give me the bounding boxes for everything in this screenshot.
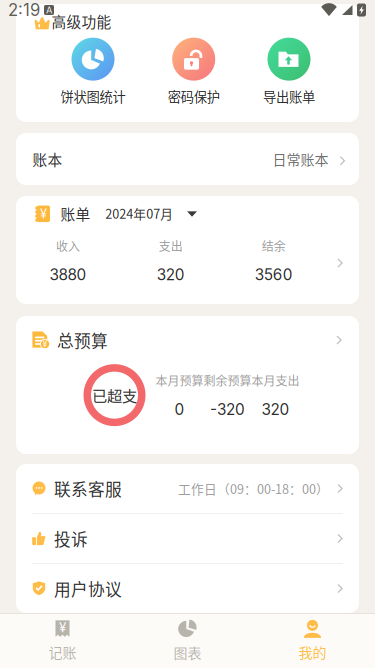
staticText: 密码保护 [168, 87, 220, 106]
staticText: 支出 [159, 237, 183, 254]
staticText: 日常账本 [272, 149, 328, 169]
staticText: ¥ [42, 339, 47, 349]
staticText: 320 [261, 400, 289, 419]
staticText: 账本 [33, 149, 63, 170]
button[interactable]: ¥ [16, 316, 359, 352]
staticText: 0 [174, 400, 184, 419]
staticText: 总预算 [57, 328, 108, 352]
staticText: 结余 [262, 237, 286, 254]
staticText: 记账 [48, 642, 76, 662]
button[interactable]: ¥ [16, 196, 359, 304]
button[interactable]: 导出账单 [241, 38, 337, 106]
staticText: 320 [157, 265, 185, 284]
button[interactable]: 账本 [16, 133, 359, 185]
staticText: 账单 [60, 203, 90, 224]
staticText: 本月支出 [251, 372, 299, 389]
staticText: ¥ [59, 619, 66, 635]
button[interactable]: 饼状图统计 [45, 38, 141, 106]
staticText: 我的 [298, 642, 326, 662]
staticText: 工作日（09：00-18：00） [178, 479, 329, 498]
staticText: 本月预算 [155, 372, 203, 389]
staticText: 2024年07月 [105, 204, 173, 222]
button[interactable]: 密码保护 [146, 38, 242, 106]
staticText: 导出账单 [263, 87, 315, 106]
staticText: 收入 [56, 237, 80, 254]
staticText: -320 [210, 400, 245, 419]
staticText: 已超支 [92, 384, 137, 406]
staticText: 2:19 [8, 0, 40, 20]
button[interactable]: 图表 [125, 614, 250, 668]
staticText: 剩余预算 [203, 372, 251, 389]
button[interactable]: 用户协议 [16, 564, 359, 613]
staticText: ¥ [40, 206, 47, 221]
staticText: 投诉 [54, 526, 88, 550]
staticText: 高级功能 [51, 10, 111, 32]
button[interactable]: ¥ [0, 614, 125, 668]
staticText: A [46, 4, 52, 16]
button[interactable]: 联系客服 [16, 464, 359, 513]
button[interactable]: 我的 [250, 614, 375, 668]
button[interactable]: 投诉 [16, 514, 359, 563]
staticText: 饼状图统计 [60, 87, 125, 106]
staticText: 用户协议 [54, 576, 122, 600]
staticText: 联系客服 [54, 476, 122, 500]
staticText: 图表 [173, 642, 201, 663]
staticText: 3560 [255, 265, 293, 284]
staticText: 3880 [49, 265, 86, 284]
